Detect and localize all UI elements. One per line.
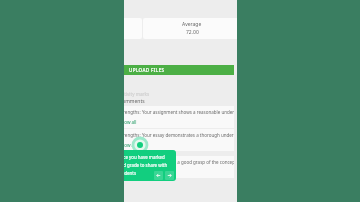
staticText: Show all bbox=[124, 119, 137, 125]
staticText: once you have marked bbox=[124, 154, 165, 160]
button[interactable]: Previous step bbox=[154, 171, 163, 180]
staticText: Activity marks bbox=[124, 91, 150, 97]
staticText: Comments bbox=[124, 98, 145, 105]
staticText: Strengths: Your assignment shows a reaso… bbox=[124, 109, 234, 115]
button[interactable]: Strengths: You have shown a good grasp o… bbox=[124, 156, 234, 178]
staticText: Show all bbox=[124, 169, 137, 175]
button[interactable]: once you have marked bbox=[124, 150, 176, 181]
button[interactable]: Strengths: Your essay demonstrates a tho… bbox=[124, 129, 234, 151]
staticText: Average bbox=[182, 21, 202, 28]
button[interactable]: UPLOAD FILES bbox=[124, 65, 234, 75]
staticText: Strengths: Your essay demonstrates a tho… bbox=[124, 132, 234, 138]
staticText: 72.00 bbox=[186, 29, 199, 36]
button[interactable]: Strengths: Your assignment shows a reaso… bbox=[124, 106, 234, 128]
button[interactable]: Average bbox=[143, 18, 237, 39]
button[interactable]: Next step bbox=[165, 171, 174, 180]
staticText: Show all bbox=[124, 142, 137, 148]
staticText: students bbox=[124, 170, 136, 176]
staticText: UPLOAD FILES bbox=[129, 67, 165, 73]
staticText: Strengths: You have shown a good grasp o… bbox=[124, 159, 234, 165]
staticText: and grade to share with bbox=[124, 162, 168, 168]
